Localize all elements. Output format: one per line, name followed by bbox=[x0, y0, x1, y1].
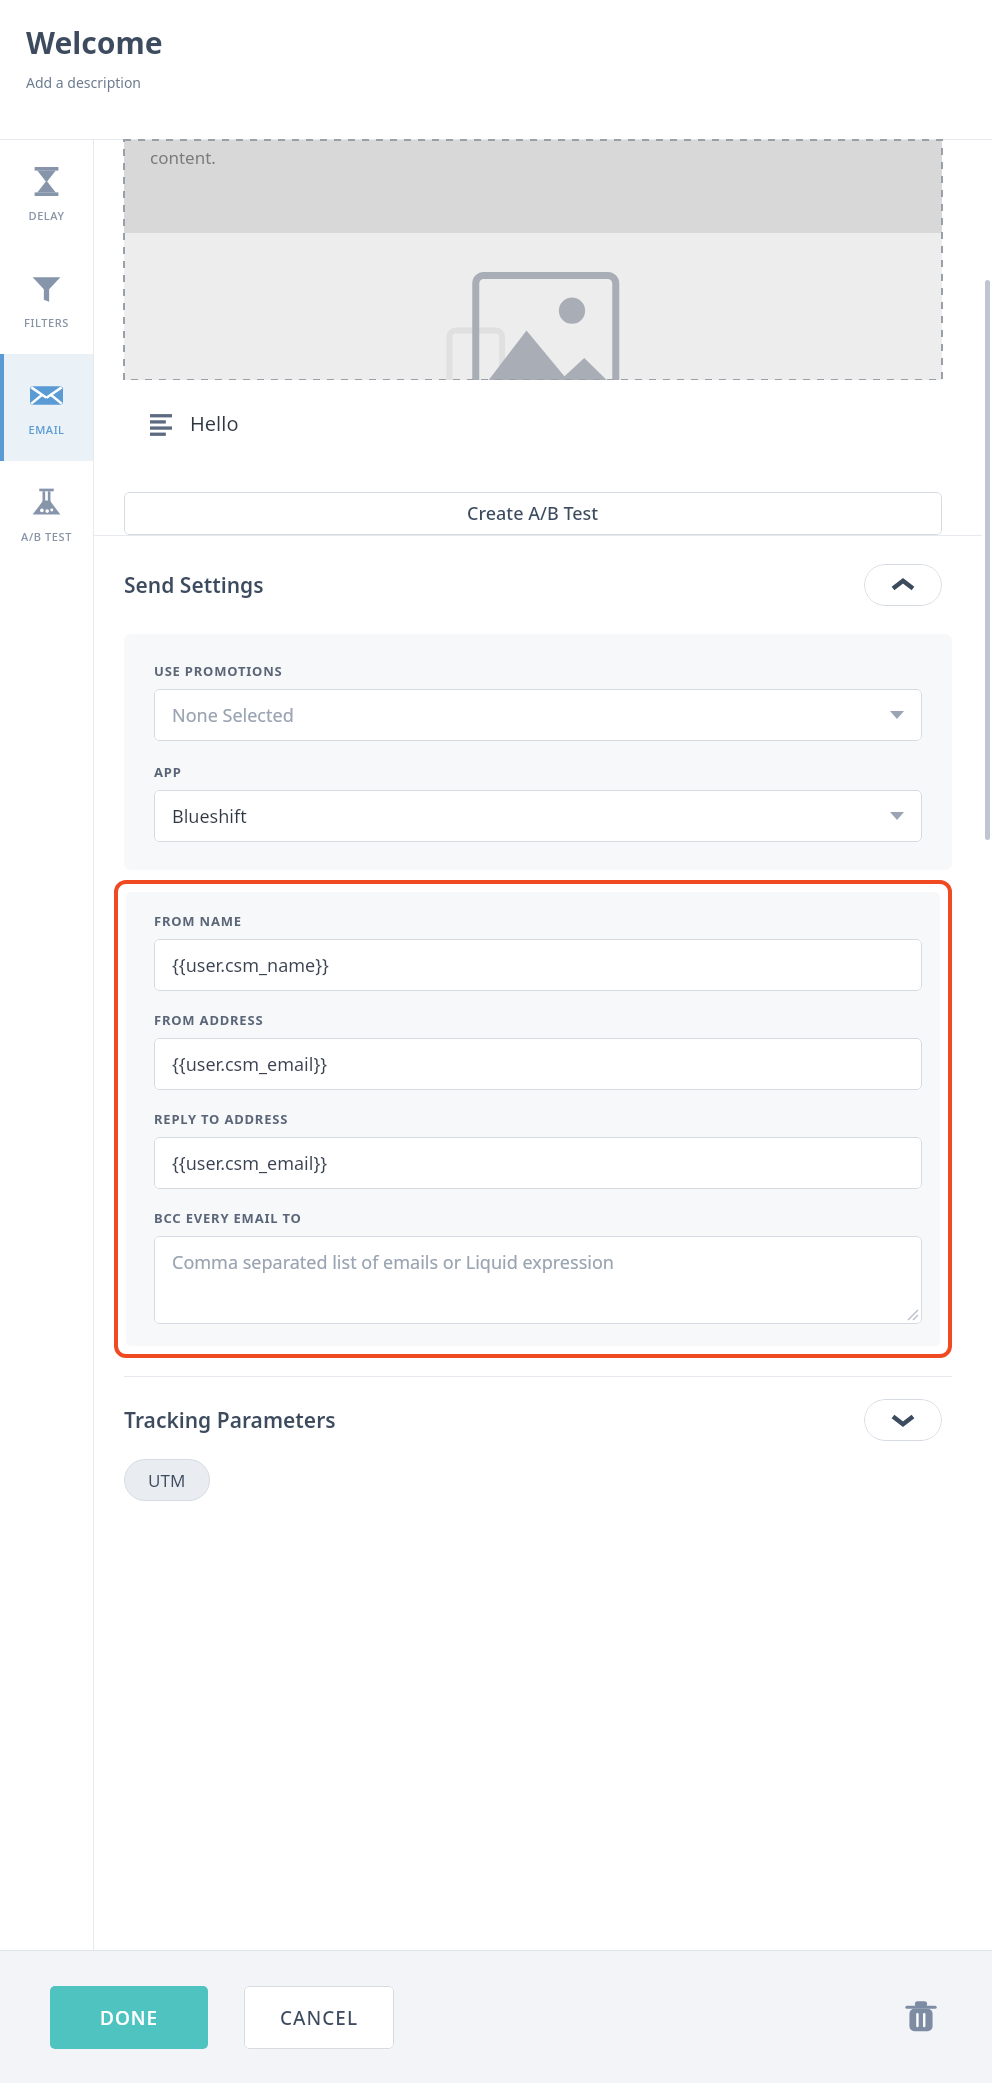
button[interactable]: UTM bbox=[124, 1459, 210, 1501]
staticText: Add a description bbox=[26, 73, 142, 92]
button[interactable]: None Selected bbox=[154, 689, 922, 741]
button[interactable]: Create A/B Test bbox=[124, 492, 942, 535]
button[interactable]: Comma separated list of emails or Liquid… bbox=[154, 1236, 922, 1324]
staticText: Create A/B Test bbox=[467, 501, 599, 526]
button[interactable]: Collapse bbox=[864, 564, 942, 606]
staticText: EMAIL bbox=[28, 422, 65, 437]
button[interactable]: Blueshift bbox=[154, 790, 922, 842]
staticText: Hello bbox=[190, 410, 239, 437]
button[interactable]: {{user.csm_email}} bbox=[154, 1038, 922, 1090]
staticText: {{user.csm_name}} bbox=[172, 953, 329, 978]
button[interactable]: EMAIL bbox=[0, 354, 93, 461]
button[interactable]: Hello bbox=[124, 380, 942, 467]
staticText: {{user.csm_email}} bbox=[172, 1151, 328, 1176]
staticText: UTM bbox=[148, 1469, 186, 1492]
button[interactable]: DONE bbox=[50, 1986, 208, 2049]
button[interactable]: DELAY bbox=[0, 140, 93, 247]
button[interactable]: CANCEL bbox=[244, 1986, 394, 2049]
staticText: USE PROMOTIONS bbox=[154, 662, 283, 680]
staticText: {{user.csm_email}} bbox=[172, 1052, 328, 1077]
button[interactable]: Delete bbox=[890, 1986, 952, 2048]
button[interactable]: {{user.csm_email}} bbox=[154, 1137, 922, 1189]
staticText: Send Settings bbox=[124, 571, 264, 600]
staticText: BCC EVERY EMAIL TO bbox=[154, 1209, 302, 1227]
staticText: REPLY TO ADDRESS bbox=[154, 1110, 289, 1128]
staticText: None Selected bbox=[172, 703, 294, 728]
staticText: DELAY bbox=[28, 208, 65, 223]
staticText: Comma separated list of emails or Liquid… bbox=[172, 1250, 614, 1275]
staticText: Welcome bbox=[26, 22, 163, 63]
staticText: Tracking Parameters bbox=[124, 1406, 336, 1435]
button[interactable]: A/B TEST bbox=[0, 461, 93, 568]
button[interactable]: {{user.csm_name}} bbox=[154, 939, 922, 991]
staticText: FROM ADDRESS bbox=[154, 1011, 264, 1029]
staticText: APP bbox=[154, 763, 182, 781]
staticText: A/B TEST bbox=[21, 529, 72, 544]
staticText: DONE bbox=[100, 2005, 159, 2031]
staticText: content. bbox=[150, 146, 216, 169]
staticText: CANCEL bbox=[280, 2005, 359, 2031]
button[interactable]: FILTERS bbox=[0, 247, 93, 354]
staticText: FROM NAME bbox=[154, 912, 242, 930]
button[interactable]: Expand bbox=[864, 1399, 942, 1441]
staticText: Blueshift bbox=[172, 804, 247, 829]
staticText: FILTERS bbox=[24, 315, 69, 330]
